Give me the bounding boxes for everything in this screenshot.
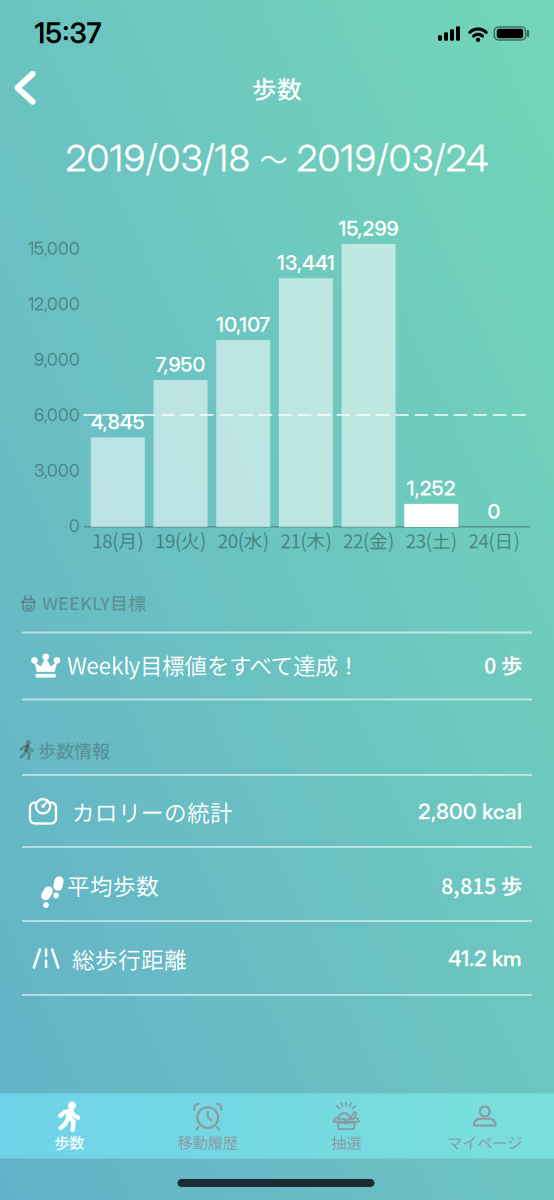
staticText: 15:37 [34,16,101,49]
staticText: 12,000 [28,294,80,314]
staticText: 総歩行距離 [72,942,187,975]
staticText: 歩数情報 [38,737,110,763]
staticText: 歩数 [54,1131,84,1153]
staticText: 23(土) [406,526,457,553]
staticText: WEEKLY目標 [42,589,146,616]
staticText: 15,299 [339,217,399,240]
staticText: 19(火) [155,526,206,553]
staticText: マイページ [447,1131,522,1153]
staticText: 18(月) [92,526,143,553]
button[interactable]: 移動履歴 [138,1093,277,1158]
staticText: 歩数 [252,70,302,106]
staticText: 7,950 [155,353,205,376]
staticText: 24(日) [468,526,519,553]
staticText: 3,000 [34,460,80,481]
staticText: 0 歩 [484,649,522,680]
staticText: 平均歩数 [67,869,159,901]
button[interactable]: マイページ [415,1093,554,1158]
staticText: 抽選 [331,1131,361,1153]
staticText: 22(金) [343,526,394,553]
staticText: 2019/03/18 [65,136,250,180]
staticText: 移動履歴 [178,1131,238,1153]
staticText: 10,107 [216,313,270,336]
staticText: 4,845 [91,410,145,434]
staticText: 20(水) [218,526,269,553]
staticText: 2019/03/24 [296,136,488,180]
staticText: 6,000 [34,405,80,425]
staticText: ～ [259,138,287,178]
staticText: 0 [487,500,500,523]
staticText: 0 [69,516,80,536]
button[interactable]: 抽選 [277,1093,415,1158]
staticText: カロリーの統計 [72,795,233,828]
staticText: 13,441 [277,251,335,275]
staticText: 15,000 [28,238,80,259]
staticText: Weekly目標値をすべて達成！ [67,648,360,681]
staticText: 21(木) [280,526,331,553]
staticText: 8,815 歩 [441,870,522,900]
staticText: 41.2 km [448,946,522,971]
staticText: 9,000 [34,349,80,370]
button[interactable]: 歩数 [0,1093,138,1158]
staticText: 1,252 [407,476,456,500]
button[interactable]: Back [5,62,45,114]
staticText: 2,800 kcal [418,799,522,824]
